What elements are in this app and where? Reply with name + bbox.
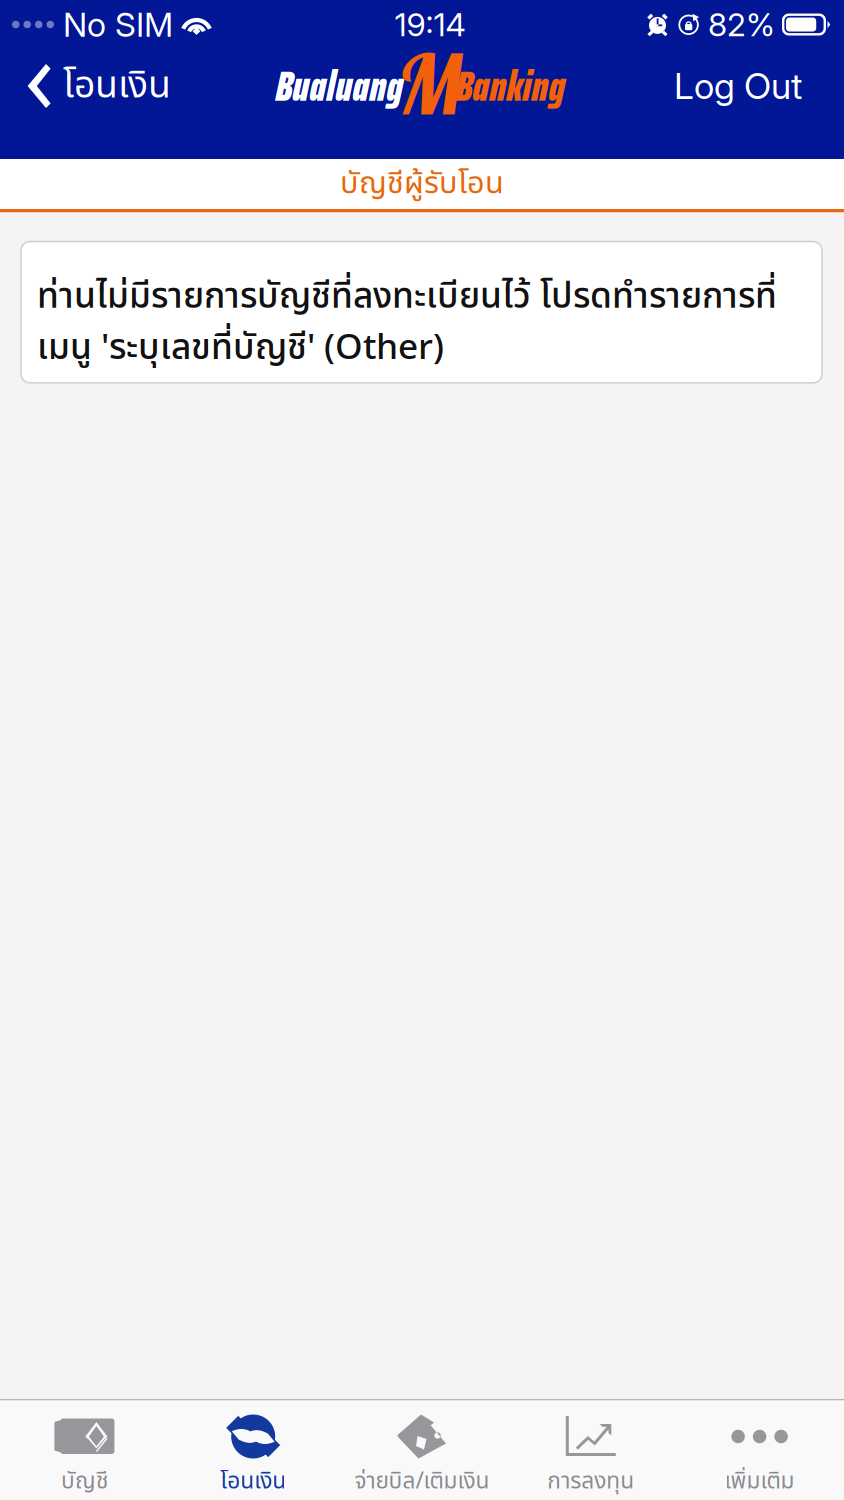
staticText: No SIM [63,4,173,45]
staticText: บัญชีผู้รับโอน [340,161,504,207]
staticText: ท่านไม่มีรายการบัญชีที่ลงทะเบียนไว้ โปรด… [37,270,777,375]
button[interactable]: โอนเงิน [0,49,183,123]
staticText: Bualuang [275,52,403,120]
staticText: การลงทุน [547,1464,634,1499]
staticText: M [397,32,462,135]
staticText: Log Out [674,64,802,108]
staticText: โอนเงิน [220,1464,286,1499]
staticText: เพิ่มเติม [725,1464,795,1499]
button[interactable]: โอนเงิน [169,1400,338,1500]
staticText: บัญชี [61,1464,108,1499]
button[interactable]: จ่ายบิล/เติมเงิน [338,1400,506,1500]
staticText: Banking [455,52,565,120]
button[interactable]: การลงทุน [506,1400,675,1500]
staticText: จ่ายบิล/เติมเงิน [354,1464,489,1499]
button[interactable]: Log Out [658,49,844,123]
staticText: 19:14 [394,5,465,44]
staticText: 82% [708,5,775,44]
button[interactable]: เพิ่มเติม [675,1400,844,1500]
staticText: โอนเงิน [63,58,171,114]
button[interactable]: บัญชี [0,1400,169,1500]
